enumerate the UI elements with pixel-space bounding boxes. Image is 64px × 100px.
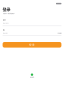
staticText: 手机号 <box>3 19 6 21</box>
staticText: 登录 <box>29 43 35 46</box>
button[interactable]: 忘记密码 <box>57 32 61 34</box>
button[interactable]: 登录 <box>3 42 61 48</box>
staticText: 密码 <box>3 29 5 31</box>
staticText: 微信登录 <box>30 76 34 78</box>
staticText: 忘记密码 <box>57 32 61 34</box>
staticText: 请输入手机号 <box>3 23 9 24</box>
staticText: 登录 <box>3 7 11 12</box>
staticText: 欢迎回来，请登录您的账户 <box>3 13 15 14</box>
staticText: 请输入密码 <box>3 32 8 34</box>
button[interactable]: WeChat login <box>30 73 34 78</box>
